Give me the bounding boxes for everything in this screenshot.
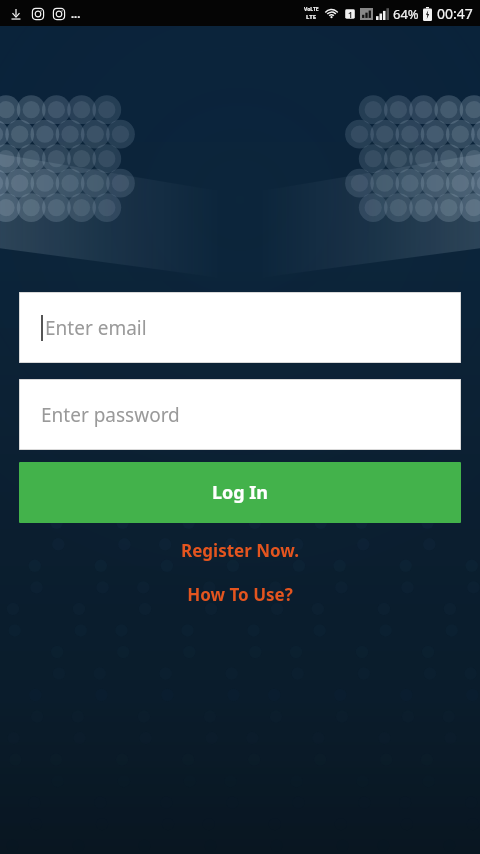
staticText: LTE — [306, 13, 317, 21]
staticText: ... — [71, 6, 81, 21]
button[interactable]: Log In — [19, 462, 461, 523]
staticText: Enter email — [45, 315, 147, 341]
button[interactable]: Register Now. — [19, 533, 461, 568]
staticText: 64% — [393, 5, 419, 23]
staticText: Register Now. — [181, 539, 299, 562]
staticText: 1 — [348, 9, 353, 20]
button[interactable]: Email input field — [19, 292, 461, 363]
staticText: How To Use? — [187, 583, 293, 606]
staticText: VoLTE — [304, 6, 319, 13]
button[interactable]: How To Use? — [19, 577, 461, 612]
button[interactable]: Password input field — [19, 379, 461, 450]
staticText: Log In — [212, 480, 269, 505]
staticText: 00:47 — [437, 4, 473, 23]
staticText: Enter password — [41, 402, 180, 428]
